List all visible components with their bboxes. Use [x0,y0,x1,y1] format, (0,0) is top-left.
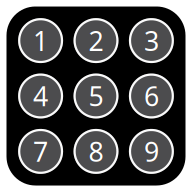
staticText: 2 [88,23,103,58]
button[interactable]: 6 [129,73,174,118]
staticText: 3 [144,23,159,58]
staticText: 7 [33,134,48,169]
staticText: 8 [88,134,103,169]
staticText: 4 [33,78,48,114]
button[interactable]: 8 [73,129,118,174]
button[interactable]: 7 [18,129,63,174]
button[interactable]: 1 [18,18,63,63]
staticText: 1 [33,23,48,58]
button[interactable]: 9 [129,129,174,174]
staticText: 5 [88,78,103,114]
button[interactable]: 4 [18,73,63,118]
button[interactable]: 3 [129,18,174,63]
button[interactable]: 5 [73,73,118,118]
staticText: 9 [144,134,159,169]
staticText: 6 [144,78,159,114]
button[interactable]: 2 [73,18,118,63]
